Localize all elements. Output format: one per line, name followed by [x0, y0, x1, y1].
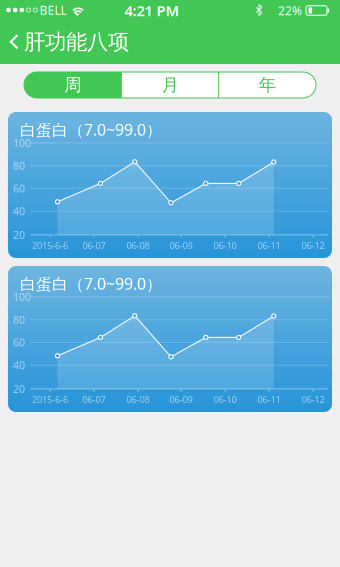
staticText: 40	[13, 204, 25, 218]
staticText: 2015-6-6	[32, 393, 68, 406]
staticText: BELL	[39, 2, 66, 18]
staticText: 40	[13, 358, 25, 372]
button[interactable]: 周	[24, 72, 121, 98]
staticText: 20	[13, 228, 25, 242]
staticText: 06-11	[257, 239, 280, 252]
button[interactable]: 月	[121, 72, 219, 98]
staticText: 80	[13, 313, 25, 327]
staticText: 06-07	[82, 239, 105, 252]
staticText: 06-11	[257, 393, 280, 406]
staticText: 白蛋白（7.0~99.0）	[20, 273, 162, 294]
staticText: 06-12	[301, 393, 324, 406]
staticText: 06-09	[169, 239, 192, 252]
staticText: 06-08	[126, 239, 149, 252]
staticText: 80	[13, 159, 25, 173]
staticText: 100	[13, 136, 31, 150]
staticText: 06-10	[213, 239, 236, 252]
staticText: 20	[13, 382, 25, 396]
staticText: 肝功能八项	[24, 29, 129, 55]
staticText: 2015-6-6	[32, 239, 68, 252]
staticText: 年	[259, 74, 276, 96]
staticText: 100	[13, 290, 31, 304]
staticText: 月	[161, 74, 178, 96]
staticText: 4:21 PM	[124, 1, 179, 20]
staticText: 06-07	[82, 393, 105, 406]
staticText: 06-10	[213, 393, 236, 406]
staticText: 22%	[278, 2, 302, 18]
staticText: 白蛋白（7.0~99.0）	[20, 119, 162, 140]
button[interactable]: 年	[219, 72, 316, 98]
staticText: 60	[13, 335, 25, 349]
staticText: 06-12	[301, 239, 324, 252]
staticText: 06-09	[169, 393, 192, 406]
button[interactable]: Back	[0, 29, 129, 55]
staticText: 周	[64, 74, 81, 96]
staticText: 06-08	[126, 393, 149, 406]
staticText: 60	[13, 181, 25, 195]
